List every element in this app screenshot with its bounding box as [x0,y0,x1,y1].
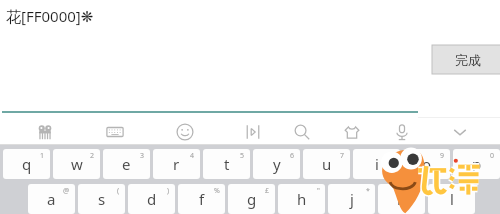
staticText: * [366,186,370,196]
staticText: o [422,154,432,174]
staticText: 0 [490,151,495,161]
button[interactable]: d [128,184,175,214]
button[interactable]: Hide keyboard [443,118,477,145]
button[interactable]: h [278,184,325,214]
button[interactable]: Theme [335,118,369,145]
staticText: 9 [440,151,445,161]
staticText: h [297,189,307,209]
staticText: s [98,189,106,209]
button[interactable]: p [453,149,500,179]
staticText: 1 [40,151,45,161]
button[interactable]: i [353,149,400,179]
button[interactable]: Voice input [385,118,419,145]
staticText: d [147,189,157,209]
staticText: 8 [390,151,395,161]
button[interactable]: y [253,149,300,179]
button[interactable]: 完成 [432,45,500,74]
button[interactable]: f [178,184,225,214]
button[interactable]: w [53,149,100,179]
staticText: 3 [140,151,145,161]
button[interactable]: o [403,149,450,179]
staticText: t [224,154,230,174]
button[interactable]: j [328,184,375,214]
button[interactable]: r [153,149,200,179]
staticText: i [375,154,379,174]
button[interactable]: Emoji [168,118,202,145]
staticText: @ [63,186,70,196]
staticText: : [468,186,470,196]
staticText: f [199,189,205,209]
button[interactable]: s [78,184,125,214]
staticText: q [22,154,32,174]
staticText: 6 [290,151,295,161]
staticText: e [122,154,131,174]
staticText: p [472,154,482,174]
staticText: ) [167,186,170,196]
staticText: 花[FF0000]❋ [6,6,94,26]
staticText: £ [265,186,270,196]
button[interactable]: a [28,184,75,214]
staticText: 4 [190,151,195,161]
button[interactable]: k [378,184,425,214]
button[interactable]: e [103,149,150,179]
button[interactable]: u [303,149,350,179]
staticText: l [450,189,454,209]
button[interactable]: q [3,149,50,179]
button[interactable]: t [203,149,250,179]
button[interactable]: Search [285,118,319,145]
staticText: a [47,189,56,209]
button[interactable]: Clipboard [236,118,270,145]
staticText: 完成 [455,52,481,68]
staticText: g [247,189,257,209]
staticText: ' [418,186,420,196]
staticText: u [322,154,332,174]
staticText: r [173,154,180,174]
staticText: y [273,154,281,174]
button[interactable]: l [428,184,475,214]
staticText: 2 [90,151,95,161]
button[interactable]: Keyboard [98,118,132,145]
staticText: 5 [240,151,245,161]
staticText: " [317,186,320,196]
staticText: 7 [340,151,345,161]
staticText: % [214,186,220,196]
staticText: w [71,154,83,174]
staticText: j [350,189,354,209]
button[interactable]: g [228,184,275,214]
staticText: k [397,189,406,209]
staticText: ( [117,186,120,196]
button[interactable]: Stickers [28,118,62,145]
